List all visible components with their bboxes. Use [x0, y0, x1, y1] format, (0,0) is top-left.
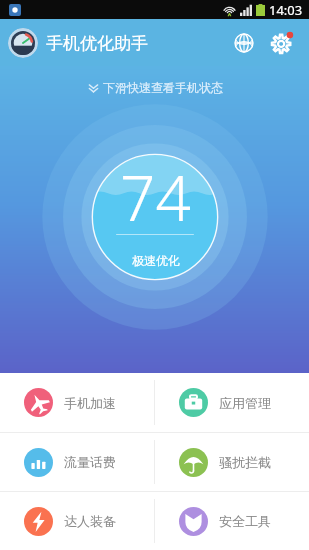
button[interactable]: Pull down [87, 80, 223, 95]
staticText: 手机优化助手 [46, 33, 148, 54]
button[interactable]: App logo [8, 28, 38, 58]
button[interactable]: 达人装备 [0, 492, 154, 550]
button[interactable]: 流量话费 [0, 433, 154, 491]
button[interactable]: 安全工具 [155, 492, 309, 550]
staticText: 手机加速 [64, 395, 116, 411]
staticText: 极速优化 [132, 253, 180, 268]
button[interactable]: 手机加速 [0, 373, 154, 432]
staticText: 下滑快速查看手机状态 [103, 80, 223, 95]
button[interactable]: 应用管理 [155, 373, 309, 432]
staticText: 骚扰拦截 [219, 454, 271, 470]
button[interactable]: 骚扰拦截 [155, 433, 309, 491]
button[interactable]: Web [227, 26, 261, 60]
staticText: 达人装备 [64, 513, 116, 529]
staticText: 14:03 [269, 1, 303, 19]
staticText: 流量话费 [64, 454, 116, 470]
staticText: 安全工具 [219, 513, 271, 529]
button[interactable]: Optimization score 74 [40, 102, 270, 332]
button[interactable]: Settings [265, 26, 299, 60]
other: Optimization score 74 [40, 102, 270, 332]
staticText: 74 [120, 155, 191, 239]
other: Pull down [87, 81, 100, 94]
staticText: 应用管理 [219, 395, 271, 411]
other: App logo [8, 28, 38, 58]
